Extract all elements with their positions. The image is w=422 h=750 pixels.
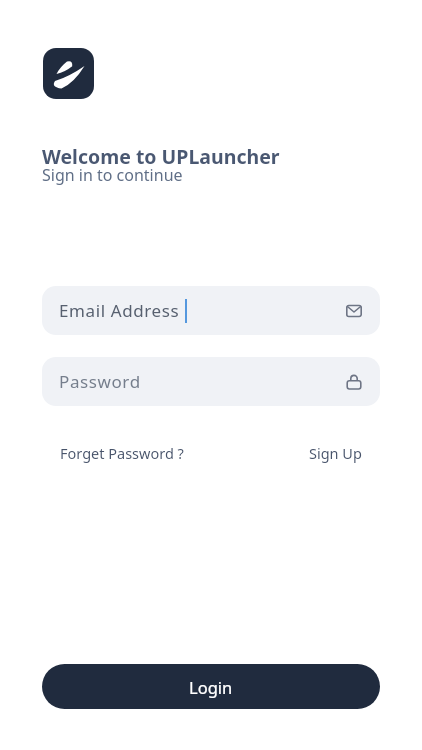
staticText: Email Address xyxy=(59,299,180,322)
button[interactable]: Login xyxy=(42,664,380,709)
staticText: Sign in to continue xyxy=(42,164,183,186)
button[interactable]: Password xyxy=(42,357,380,406)
button[interactable]: Forget Password ? xyxy=(60,443,184,463)
staticText: Login xyxy=(189,676,233,698)
button[interactable]: Sign Up xyxy=(309,443,362,463)
staticText: Welcome to UPLauncher xyxy=(42,143,280,170)
button[interactable]: Email Address xyxy=(42,286,380,335)
staticText: Password xyxy=(59,370,141,393)
